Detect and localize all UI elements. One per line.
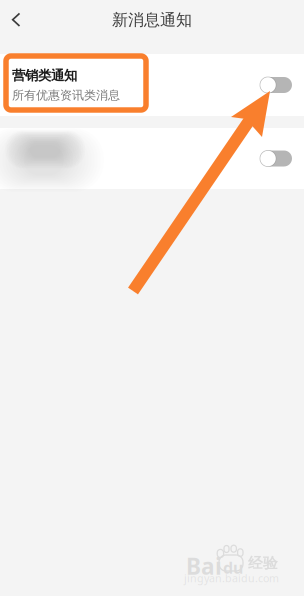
button[interactable]: Back	[0, 0, 32, 40]
staticText: 新消息通知	[112, 10, 192, 30]
staticText: 所有优惠资讯类消息	[12, 88, 120, 102]
button[interactable]: 营销类通知	[0, 54, 304, 116]
staticText: 营销类通知	[12, 67, 77, 84]
staticText: 经验	[248, 554, 278, 572]
staticText: Bai	[186, 551, 222, 581]
staticText: du	[223, 557, 243, 578]
staticText: jingyan.baidu.com	[184, 571, 279, 585]
button[interactable]	[0, 128, 304, 189]
